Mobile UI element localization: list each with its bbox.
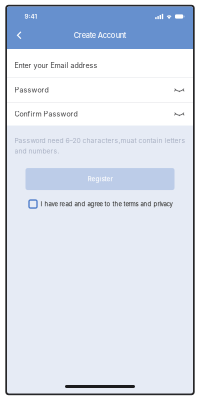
staticText: Enter your Email address: [14, 61, 97, 70]
button[interactable]: Show password: [174, 85, 185, 95]
staticText: Register: [87, 175, 112, 183]
staticText: Password: [14, 86, 48, 94]
staticText: Password need 6–20 characters,muat conta…: [14, 136, 185, 145]
button[interactable]: Back: [7, 27, 30, 44]
button[interactable]: I have read and agree to the terms and p…: [7, 190, 193, 208]
staticText: Confirm Password: [14, 110, 77, 118]
staticText: Create Account: [74, 31, 127, 40]
button[interactable]: Show password: [174, 109, 185, 119]
button[interactable]: Register: [25, 168, 174, 190]
staticText: I have read and agree to the terms and p…: [40, 200, 172, 208]
staticText: and numbers.: [14, 147, 59, 155]
staticText: 9:41: [24, 13, 37, 20]
